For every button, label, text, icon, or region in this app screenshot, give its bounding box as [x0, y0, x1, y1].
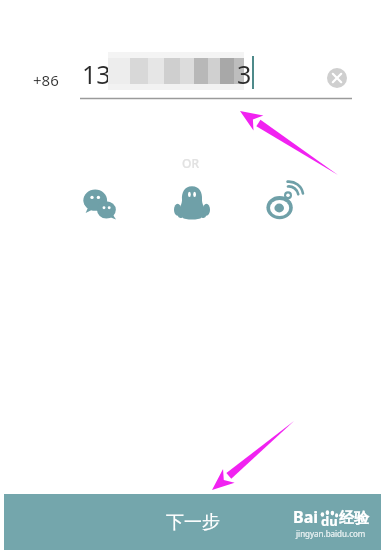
button[interactable]: QQ login	[169, 180, 215, 226]
staticText: OR	[0, 155, 381, 171]
button[interactable]: Weibo login	[261, 181, 307, 227]
button[interactable]: WeChat login	[78, 183, 122, 227]
staticText: 经验	[339, 509, 369, 528]
staticText: 13	[82, 57, 111, 91]
staticText: jingyan.baidu.com	[296, 528, 366, 539]
staticText: 3	[237, 57, 252, 91]
button[interactable]: 13	[80, 52, 270, 98]
button[interactable]: Clear	[320, 61, 354, 95]
staticText: Bai	[293, 506, 319, 528]
staticText: 下一步	[166, 511, 220, 534]
staticText: +86	[33, 70, 59, 90]
button[interactable]: 下一步	[4, 494, 381, 550]
staticText: du	[321, 512, 338, 530]
